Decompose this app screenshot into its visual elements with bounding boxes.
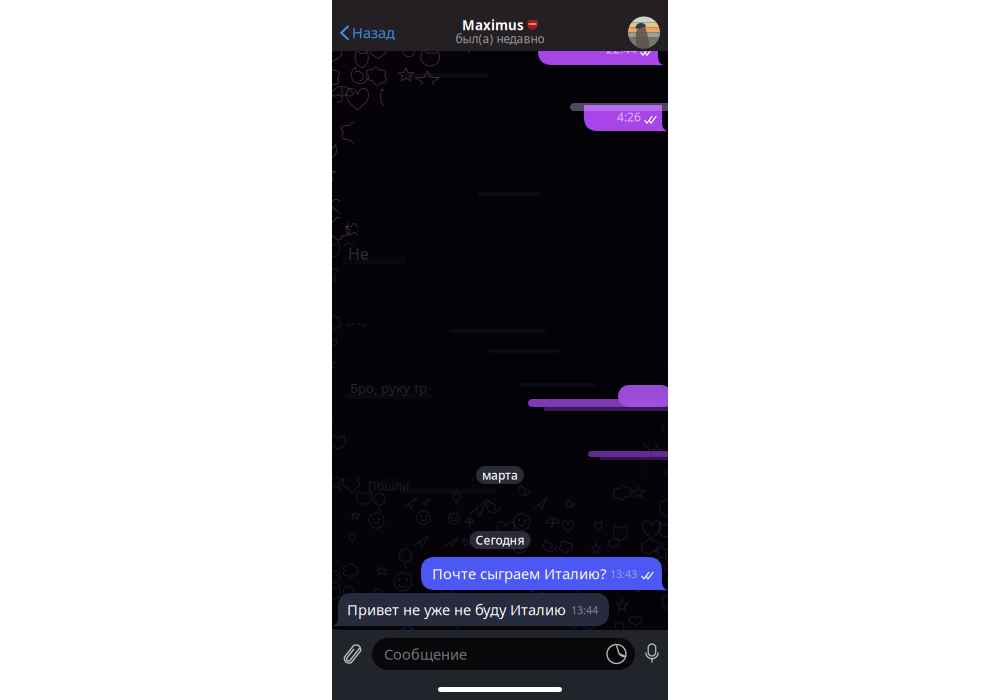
staticText: Назад xyxy=(352,23,395,42)
button[interactable]: Voice message xyxy=(635,643,668,665)
staticText: 13:44 xyxy=(571,603,598,617)
staticText: Не xyxy=(348,243,369,264)
button[interactable]: Назад xyxy=(332,15,399,49)
staticText: 13:43 xyxy=(610,567,637,581)
button[interactable]: Attach xyxy=(332,642,372,666)
staticText: был(а) недавно xyxy=(455,30,544,46)
staticText: Maximus xyxy=(462,16,524,34)
staticText: Пошли xyxy=(368,478,409,494)
staticText: Бро, руку тр xyxy=(350,379,427,397)
staticText: Сообщение xyxy=(384,644,467,664)
staticText: Привет не уже не буду Италию xyxy=(347,600,566,619)
button[interactable]: Profile xyxy=(628,16,668,48)
staticText: 22:44 xyxy=(606,41,637,57)
staticText: Сегодня xyxy=(475,532,524,548)
button[interactable]: Stickers xyxy=(607,644,635,663)
staticText: Почте сыграем Италию? xyxy=(432,564,606,583)
staticText: 4:26 xyxy=(617,109,641,125)
staticText: марта xyxy=(482,467,518,483)
